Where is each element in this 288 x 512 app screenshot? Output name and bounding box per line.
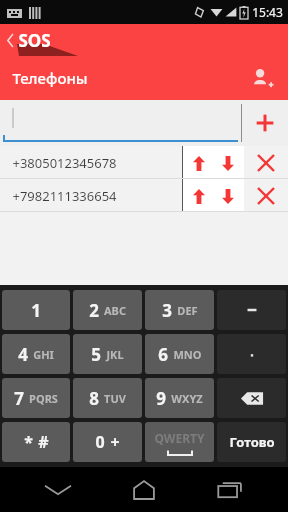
button[interactable]: 5 xyxy=(73,334,142,374)
button[interactable]: Back xyxy=(4,24,57,56)
button[interactable]: Move down xyxy=(215,183,241,209)
button[interactable]: Back xyxy=(30,467,86,512)
staticText: 8 xyxy=(89,387,99,410)
button[interactable]: 1 xyxy=(2,290,70,330)
staticText: 4 xyxy=(18,343,28,366)
staticText: +7982111336654 xyxy=(12,187,117,205)
button[interactable]: 8 xyxy=(73,378,142,418)
button[interactable]: 3 xyxy=(145,290,214,330)
button[interactable]: Switch to QWERTY keyboard xyxy=(145,422,214,462)
staticText: * xyxy=(24,431,33,453)
button[interactable]: Delete xyxy=(244,146,288,179)
staticText: ABC xyxy=(104,303,126,318)
button[interactable]: Home xyxy=(116,467,172,512)
staticText: DEF xyxy=(177,303,198,318)
staticText: 6 xyxy=(158,343,168,366)
button[interactable]: Add phone number xyxy=(242,100,288,146)
button[interactable]: Recent apps xyxy=(202,467,258,512)
staticText: 3 xyxy=(162,299,172,322)
staticText: QWERTY xyxy=(154,430,205,446)
staticText: SOS xyxy=(18,29,51,52)
staticText: + xyxy=(110,431,120,453)
staticText: 15:43 xyxy=(252,4,283,20)
button[interactable]: Backspace xyxy=(217,378,286,418)
button[interactable]: Move up xyxy=(186,183,212,209)
button[interactable]: 7 xyxy=(2,378,70,418)
staticText: # xyxy=(38,431,49,453)
button[interactable]: 6 xyxy=(145,334,214,374)
staticText: 7 xyxy=(14,387,24,410)
button[interactable]: 4 xyxy=(2,334,70,374)
staticText: JKL xyxy=(106,347,124,362)
button[interactable] xyxy=(0,100,241,146)
staticText: TUV xyxy=(104,391,126,406)
staticText: WXYZ xyxy=(171,391,203,406)
staticText: GHI xyxy=(33,347,54,362)
button[interactable]: * xyxy=(2,422,70,462)
button[interactable]: Add contact xyxy=(244,60,280,96)
button[interactable] xyxy=(217,290,286,330)
button[interactable]: +7982111336654 xyxy=(0,179,182,212)
button[interactable] xyxy=(217,334,286,374)
staticText: 9 xyxy=(156,387,166,410)
staticText: 2 xyxy=(89,299,99,322)
button[interactable]: +3805012345678 xyxy=(0,146,182,179)
button[interactable]: Move down xyxy=(215,150,241,176)
button[interactable]: Delete xyxy=(244,179,288,212)
button[interactable]: 9 xyxy=(145,378,214,418)
button[interactable]: Готово xyxy=(217,422,286,462)
button[interactable]: Move up xyxy=(186,150,212,176)
staticText: 0 xyxy=(95,431,105,453)
staticText: PQRS xyxy=(29,391,58,406)
button[interactable]: 0 xyxy=(73,422,142,462)
staticText: 1 xyxy=(31,299,41,322)
staticText: Телефоны xyxy=(12,68,88,88)
staticText: 5 xyxy=(91,343,101,366)
staticText: Готово xyxy=(229,433,275,451)
button[interactable]: 2 xyxy=(73,290,142,330)
staticText: +3805012345678 xyxy=(12,154,117,172)
staticText: MNO xyxy=(173,347,202,362)
